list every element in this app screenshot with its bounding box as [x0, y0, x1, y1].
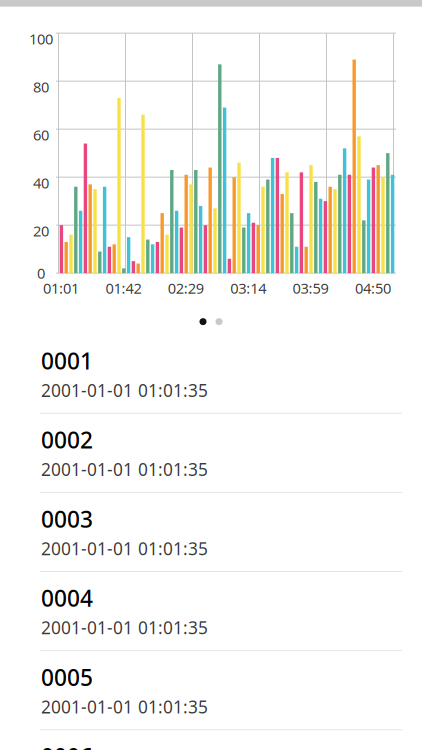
button[interactable]: Share	[378, 0, 422, 7]
staticText: 40	[33, 173, 49, 193]
button[interactable]: 0004	[0, 572, 422, 651]
staticText: 80	[33, 77, 49, 97]
staticText: 0003	[41, 504, 93, 534]
button[interactable]: 0003	[0, 493, 422, 572]
staticText: 04:50	[355, 278, 391, 298]
staticText: 100	[29, 29, 53, 49]
button[interactable]: 0001	[0, 335, 422, 414]
staticText: 0002	[41, 425, 93, 455]
staticText: 2001-01-01 01:01:35	[41, 458, 208, 481]
staticText: 03:14	[230, 278, 266, 298]
staticText: 0006	[41, 741, 93, 750]
staticText: 0001	[41, 346, 93, 376]
staticText: 20	[33, 221, 49, 241]
button[interactable]: Back	[0, 0, 44, 7]
staticText: 60	[33, 125, 49, 145]
staticText: 03:59	[293, 278, 329, 298]
staticText: 2001-01-01 01:01:35	[41, 537, 208, 560]
staticText: 0005	[41, 662, 93, 692]
button[interactable]: 0006	[0, 730, 422, 750]
button[interactable]: 0005	[0, 651, 422, 730]
staticText: 01:42	[105, 278, 141, 298]
staticText: 0004	[41, 583, 93, 613]
staticText: 02:29	[168, 278, 204, 298]
staticText: 0	[37, 263, 45, 283]
staticText: 2001-01-01 01:01:35	[41, 616, 208, 639]
staticText: 2001-01-01 01:01:35	[41, 695, 208, 718]
staticText: 01:01	[43, 278, 79, 298]
button[interactable]: 0002	[0, 414, 422, 493]
staticText: 2001-01-01 01:01:35	[41, 379, 208, 402]
